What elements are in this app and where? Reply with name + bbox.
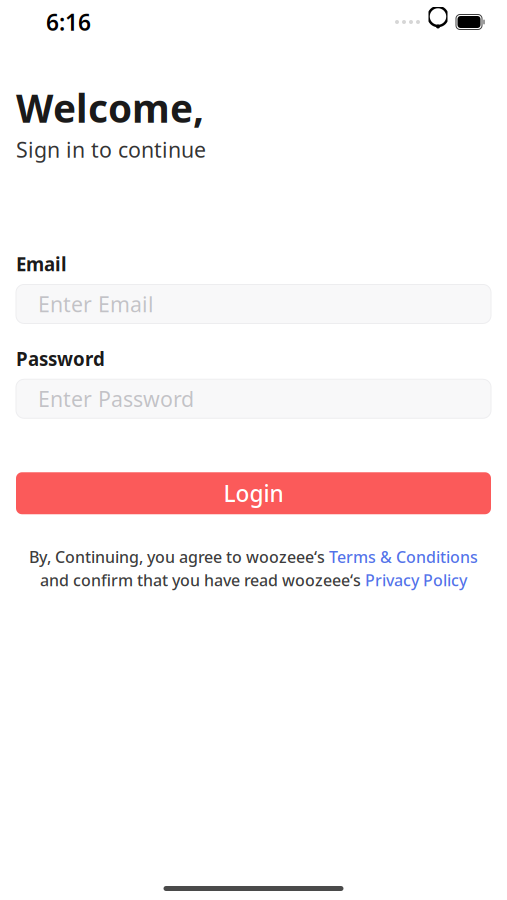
staticText: Email — [16, 252, 67, 276]
staticText: Enter Email — [38, 290, 154, 318]
button[interactable]: Login — [16, 472, 491, 514]
staticText: Terms & Conditions — [329, 546, 478, 567]
staticText: Password — [16, 346, 105, 371]
staticText: Privacy Policy — [365, 569, 467, 591]
button[interactable]: Terms & Conditions — [329, 546, 478, 567]
staticText: Login — [223, 478, 283, 508]
staticText: 6:16 — [46, 7, 91, 37]
button[interactable]: Enter Email — [16, 284, 491, 323]
staticText: By, Continuing, you agree to woozeee‘s — [29, 546, 329, 567]
staticText: and confirm that you have read woozeee‘s — [40, 569, 365, 591]
button[interactable]: Enter Password — [16, 379, 491, 418]
staticText: Sign in to continue — [16, 135, 206, 164]
staticText: Welcome, — [16, 82, 204, 133]
staticText: Enter Password — [38, 385, 194, 413]
button[interactable]: Privacy Policy — [365, 569, 467, 591]
